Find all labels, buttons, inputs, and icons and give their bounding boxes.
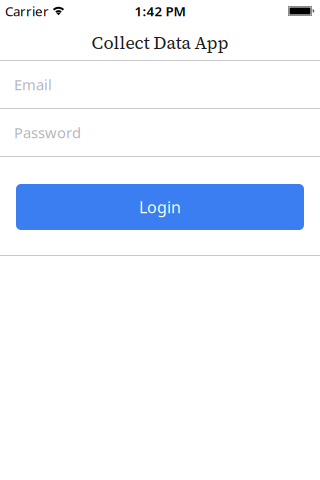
staticText: Collect Data App [91,31,228,55]
staticText: Login [139,196,181,218]
staticText: 1:42 PM [134,2,185,20]
button[interactable]: Login [16,184,304,230]
button[interactable]: Email [0,61,320,108]
button[interactable]: Password [0,109,320,156]
staticText: Email [14,75,52,94]
staticText: Carrier [5,2,49,20]
staticText: Password [14,123,81,142]
